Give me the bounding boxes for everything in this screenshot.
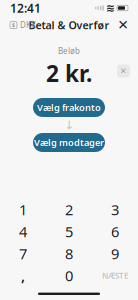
staticText: ✕ [120,66,127,76]
button[interactable]: , [0,265,46,287]
button[interactable]: Vælg modtager [33,133,105,152]
staticText: , [21,266,25,285]
staticText: $ [12,21,15,29]
staticText: 6 [111,222,119,241]
button[interactable]: 9 [92,243,138,265]
staticText: 0 [65,266,73,285]
staticText: Betal & Overfør [28,18,109,32]
button[interactable]: 6 [92,221,138,243]
button[interactable]: 2 [46,199,92,221]
staticText: 5 [65,222,73,241]
staticText: Vælg frakonto [37,101,101,114]
staticText: ↓ [64,118,74,132]
staticText: DKK [20,20,36,30]
staticText: 4 [19,222,27,241]
staticText: 9 [111,244,119,263]
staticText: ≋ [106,2,115,14]
button[interactable]: 8 [46,243,92,265]
button[interactable]: Luk [115,17,131,33]
button[interactable]: 1 [0,199,46,221]
button[interactable]: 7 [0,243,46,265]
staticText: 2 kr. [46,58,92,88]
button[interactable]: 0 [46,265,92,287]
staticText: NÆSTE [102,270,128,281]
button[interactable]: Ryd beløb [117,64,130,77]
staticText: 7 [19,244,27,263]
staticText: 8 [65,244,73,263]
staticText: 2 [65,200,73,219]
button[interactable]: 4 [0,221,46,243]
button[interactable]: Vælg frakonto [33,98,105,117]
staticText: 3 [111,200,119,219]
staticText: 1 [19,200,27,219]
button[interactable]: 5 [46,221,92,243]
button[interactable]: $ [7,16,39,34]
button[interactable]: 3 [92,199,138,221]
staticText: ✕ [117,17,128,32]
staticText: Vælg modtager [34,136,104,149]
staticText: 12:41 [10,0,41,16]
button[interactable]: NÆSTE [92,265,138,287]
staticText: Beløb [58,46,80,56]
